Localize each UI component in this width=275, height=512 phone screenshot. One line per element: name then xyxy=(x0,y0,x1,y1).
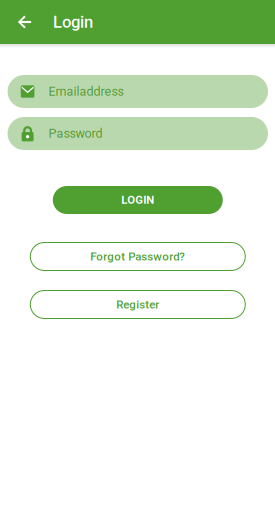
staticText: Emailaddress xyxy=(49,84,124,99)
button[interactable]: Forgot Password? xyxy=(30,242,245,270)
staticText: Register xyxy=(116,298,159,311)
staticText: Login xyxy=(53,12,93,32)
button[interactable]: LOGIN xyxy=(53,186,223,214)
button[interactable]: Register xyxy=(30,290,245,318)
staticText: LOGIN xyxy=(121,193,154,207)
staticText: Password xyxy=(49,126,103,141)
button[interactable]: Back xyxy=(10,0,40,44)
staticText: Forgot Password? xyxy=(90,250,185,263)
